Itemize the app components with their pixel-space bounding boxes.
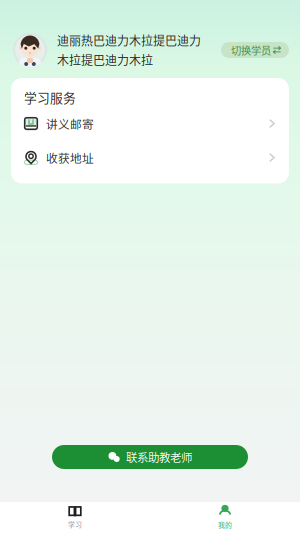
staticText: 收获地址 — [46, 149, 94, 166]
button[interactable]: 切换学员 — [221, 42, 289, 58]
staticText: 学习服务 — [24, 88, 76, 106]
staticText: 迪丽热巴迪力木拉提巴迪力 — [57, 32, 201, 49]
staticText: 切换学员 — [231, 43, 271, 57]
staticText: 讲义邮寄 — [46, 115, 94, 132]
staticText: 联系助教老师 — [126, 449, 192, 465]
button[interactable]: 收获地址 — [11, 140, 289, 174]
button[interactable]: 我的 — [150, 502, 300, 533]
button[interactable]: 学习 — [0, 502, 150, 533]
staticText: 木拉提巴迪力木拉 — [57, 51, 153, 68]
staticText: 我的 — [218, 520, 232, 530]
button[interactable]: 联系助教老师 — [52, 445, 248, 469]
button[interactable]: 讲义邮寄 — [11, 106, 289, 140]
staticText: 学习 — [68, 519, 82, 529]
